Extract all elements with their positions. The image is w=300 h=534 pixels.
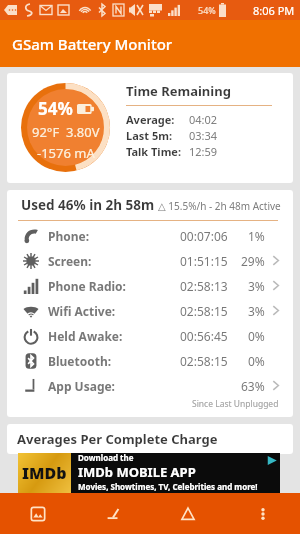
staticText: 3% bbox=[248, 278, 265, 294]
staticText: Time Remaining bbox=[126, 82, 231, 100]
staticText: Held Awake: bbox=[48, 328, 123, 344]
button[interactable]: Phone Radio: bbox=[7, 273, 293, 298]
staticText: Bluetooth: bbox=[48, 353, 112, 369]
staticText: 02:58:13 bbox=[180, 278, 228, 294]
staticText: Last 5m: bbox=[126, 128, 173, 143]
button[interactable]: IMDb bbox=[18, 453, 280, 493]
button[interactable]: Deltas bbox=[150, 493, 225, 534]
staticText: Phone: bbox=[48, 228, 90, 244]
staticText: Movies, Showtimes, TV, Celebrities and m… bbox=[78, 481, 258, 492]
staticText: 54% bbox=[198, 4, 216, 16]
staticText: Download the bbox=[78, 452, 134, 463]
staticText: 02:58:15 bbox=[180, 303, 228, 319]
staticText: 02:58:15 bbox=[180, 353, 228, 369]
staticText: -1576 mA bbox=[37, 144, 95, 162]
staticText: Average: bbox=[126, 112, 175, 127]
staticText: 3% bbox=[248, 303, 265, 319]
staticText: 1% bbox=[248, 228, 265, 244]
staticText: Averages Per Complete Charge bbox=[17, 430, 218, 448]
staticText: 12:59 bbox=[189, 144, 218, 159]
staticText: IMDb bbox=[22, 462, 67, 484]
staticText: 01:51:15 bbox=[180, 253, 228, 269]
staticText: Phone Radio: bbox=[48, 278, 126, 294]
button[interactable]: App Usage: bbox=[7, 373, 293, 398]
staticText: 29% bbox=[241, 253, 265, 269]
button[interactable]: Screen: bbox=[7, 248, 293, 273]
button[interactable]: More options bbox=[225, 493, 300, 534]
staticText: IMDb MOBILE APP bbox=[78, 463, 196, 481]
staticText: 03:34 bbox=[189, 128, 218, 143]
staticText: 0% bbox=[248, 353, 265, 369]
staticText: △ 15.5%/h - 2h 48m Active bbox=[158, 199, 281, 213]
staticText: 00:56:45 bbox=[180, 328, 228, 344]
staticText: Screen: bbox=[48, 253, 92, 269]
staticText: Talk Time: bbox=[126, 144, 182, 159]
staticText: App Usage: bbox=[48, 378, 115, 394]
staticText: 8:06 PM bbox=[253, 3, 295, 18]
staticText: Wifi Active: bbox=[48, 303, 116, 319]
button[interactable]: Phone: bbox=[7, 223, 293, 248]
button[interactable]: Wifi Active: bbox=[7, 298, 293, 323]
staticText: 0% bbox=[248, 328, 265, 344]
button[interactable]: Gallery bbox=[0, 493, 75, 534]
staticText: 54% bbox=[38, 97, 73, 120]
button[interactable]: Held Awake: bbox=[7, 323, 293, 348]
staticText: 92°F 3.80V bbox=[32, 123, 100, 141]
staticText: 63% bbox=[241, 378, 265, 394]
staticText: Used 46% in 2h 58m bbox=[21, 196, 155, 214]
staticText: GSam Battery Monitor bbox=[12, 34, 173, 54]
staticText: 04:02 bbox=[189, 112, 218, 127]
staticText: 00:07:06 bbox=[180, 228, 228, 244]
staticText: Since Last Unplugged bbox=[192, 398, 279, 410]
button[interactable]: Bluetooth: bbox=[7, 348, 293, 373]
button[interactable]: Chart bbox=[75, 493, 150, 534]
